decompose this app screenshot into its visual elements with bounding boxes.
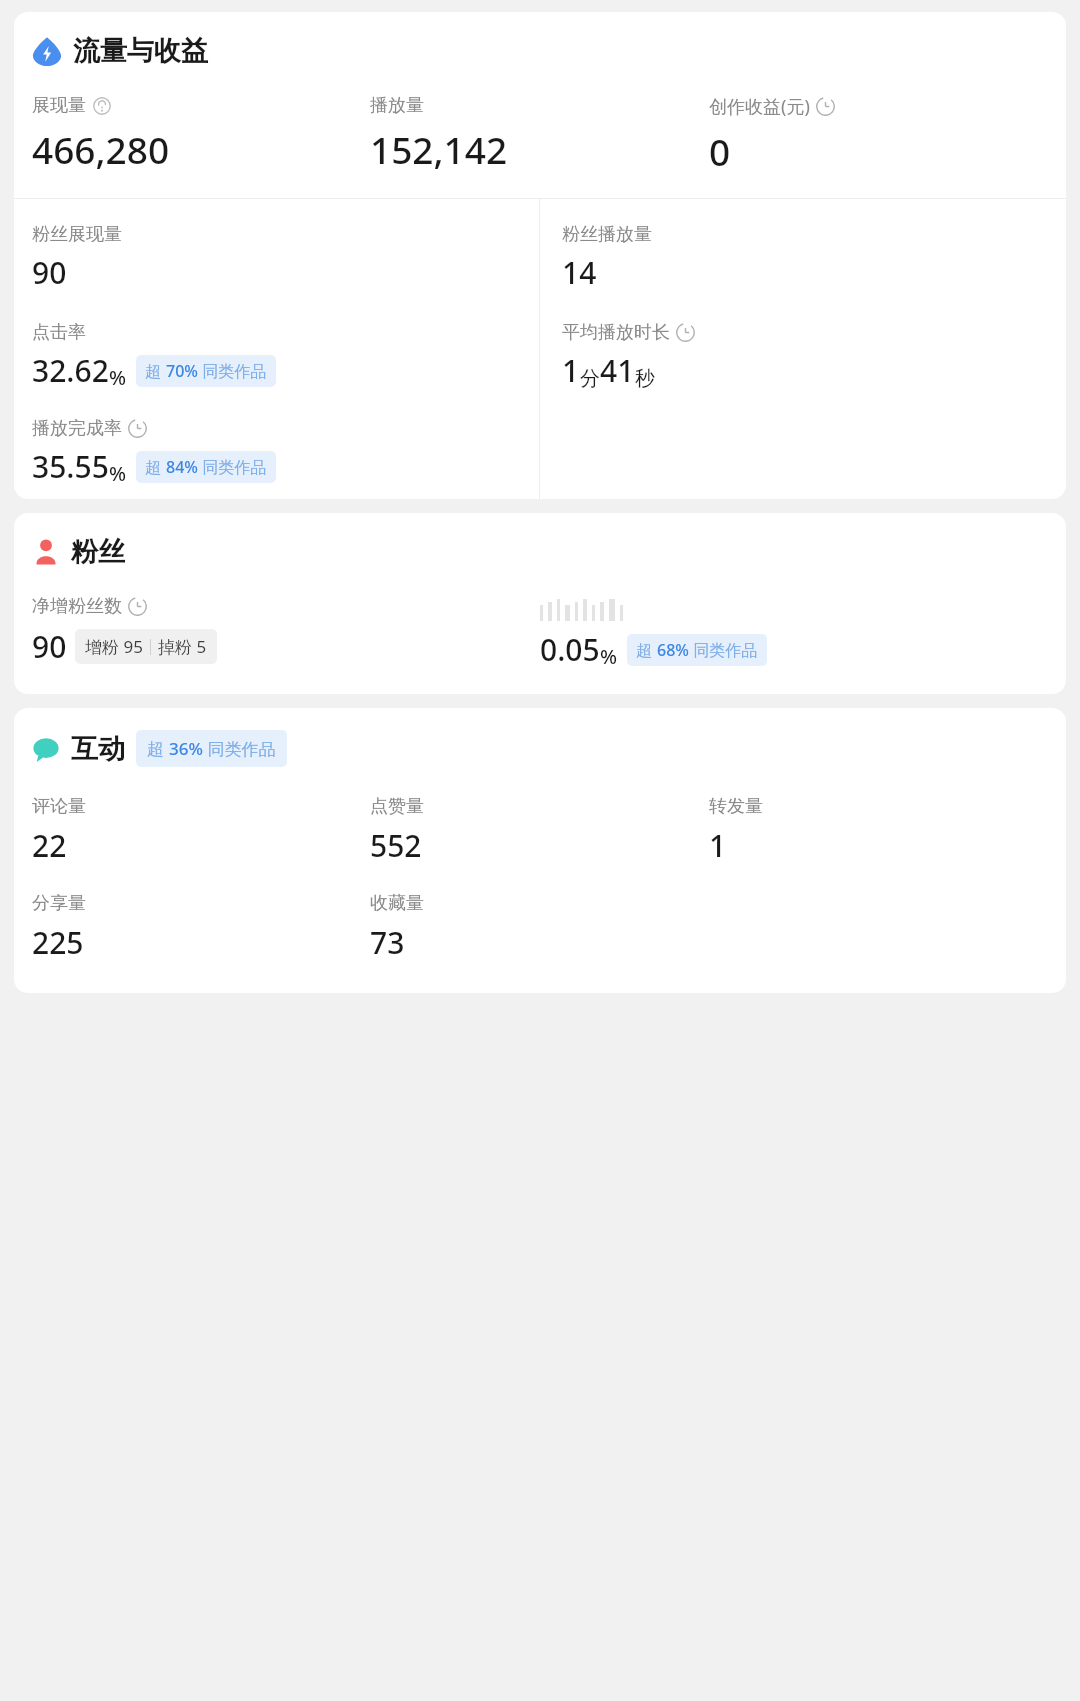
staticText: 粉丝 (71, 535, 125, 569)
staticText: 0.05 (540, 629, 600, 670)
staticText: 225 (32, 922, 84, 963)
button[interactable]: 收藏量 (370, 892, 709, 963)
staticText: 创作收益(元) (709, 94, 810, 119)
staticText: 超 (145, 360, 166, 382)
staticText: 点击率 (32, 321, 86, 344)
button[interactable]: Help (93, 97, 111, 115)
staticText: 1 (562, 350, 580, 391)
staticText: % (600, 643, 618, 670)
staticText: 分享量 (32, 892, 86, 915)
staticText: 152,142 (370, 124, 508, 174)
button[interactable]: 点赞量 (370, 795, 709, 866)
other: Fans (32, 538, 60, 566)
staticText: 36% (169, 737, 203, 760)
other: Interaction (32, 735, 60, 763)
staticText: % (109, 460, 127, 487)
staticText: 点赞量 (370, 795, 424, 818)
staticText: 展现量 (32, 94, 86, 117)
staticText: 14 (562, 252, 597, 293)
staticText: 超 (636, 639, 657, 661)
staticText: 互动 (71, 732, 125, 766)
staticText: 41 (600, 350, 635, 391)
staticText: 掉粉 5 (158, 635, 207, 658)
staticText: 转发量 (709, 795, 763, 818)
button[interactable]: History (128, 597, 147, 616)
staticText: 84% (166, 456, 198, 478)
staticText: 评论量 (32, 795, 86, 818)
staticText: 同类作品 (198, 456, 267, 478)
staticText: 0 (709, 126, 731, 176)
staticText: 90 (32, 626, 67, 667)
staticText: 秒 (635, 366, 655, 391)
staticText: 粉丝播放量 (562, 223, 652, 246)
staticText: 32.62 (32, 350, 109, 391)
staticText: 22 (32, 825, 67, 866)
staticText: 超 (147, 737, 169, 760)
staticText: 466,280 (32, 124, 170, 174)
button[interactable]: 评论量 (32, 795, 370, 866)
button[interactable]: History (128, 419, 147, 438)
staticText: 超 (145, 456, 166, 478)
button[interactable]: History (816, 97, 835, 116)
button[interactable]: 超 (627, 634, 767, 666)
staticText: 平均播放时长 (562, 321, 670, 344)
button[interactable]: 超 (136, 730, 287, 767)
staticText: 流量与收益 (73, 34, 208, 68)
staticText: 收藏量 (370, 892, 424, 915)
staticText: 同类作品 (203, 737, 276, 760)
staticText: 90 (32, 252, 67, 293)
button[interactable]: 分享量 (32, 892, 370, 963)
staticText: 播放完成率 (32, 417, 122, 440)
staticText: % (109, 364, 127, 391)
staticText: 73 (370, 922, 405, 963)
staticText: 播放量 (370, 94, 424, 117)
staticText: 68% (657, 639, 689, 661)
button[interactable]: 转发量 (709, 795, 1048, 866)
staticText: 70% (166, 360, 198, 382)
staticText: 粉丝展现量 (32, 223, 122, 246)
button[interactable]: 增粉 95 (75, 629, 217, 664)
button[interactable]: 超 (136, 355, 276, 387)
staticText: 35.55 (32, 446, 109, 487)
staticText: 552 (370, 825, 422, 866)
button[interactable]: 超 (136, 451, 276, 483)
staticText: 增粉 95 (85, 635, 143, 658)
staticText: 同类作品 (689, 639, 758, 661)
staticText: 分 (580, 366, 600, 391)
staticText: 1 (709, 825, 727, 866)
button[interactable]: History (676, 323, 695, 342)
staticText: 同类作品 (198, 360, 267, 382)
staticText: 净增粉丝数 (32, 595, 122, 618)
other: Traffic (32, 36, 62, 66)
